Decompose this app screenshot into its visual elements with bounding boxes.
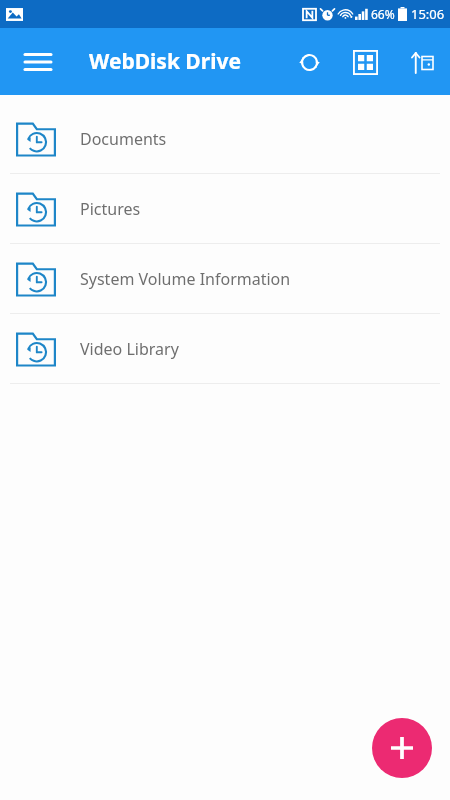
staticText: Video Library [80,338,179,360]
button[interactable]: Refresh [288,41,330,83]
button[interactable]: Add [372,718,432,778]
button[interactable]: Video Library [0,314,450,383]
button[interactable]: Upload [400,41,442,83]
staticText: WebDisk Drive [89,47,241,76]
staticText: System Volume Information [80,268,291,290]
staticText: 66% [371,6,395,22]
button[interactable]: System Volume Information [0,244,450,313]
staticText: 15:06 [411,5,445,23]
button[interactable]: Open navigation menu [16,40,60,84]
button[interactable]: Documents [0,104,450,173]
button[interactable]: Grid view [344,41,386,83]
button[interactable]: Pictures [0,174,450,243]
staticText: Pictures [80,198,141,220]
staticText: Documents [80,128,167,150]
